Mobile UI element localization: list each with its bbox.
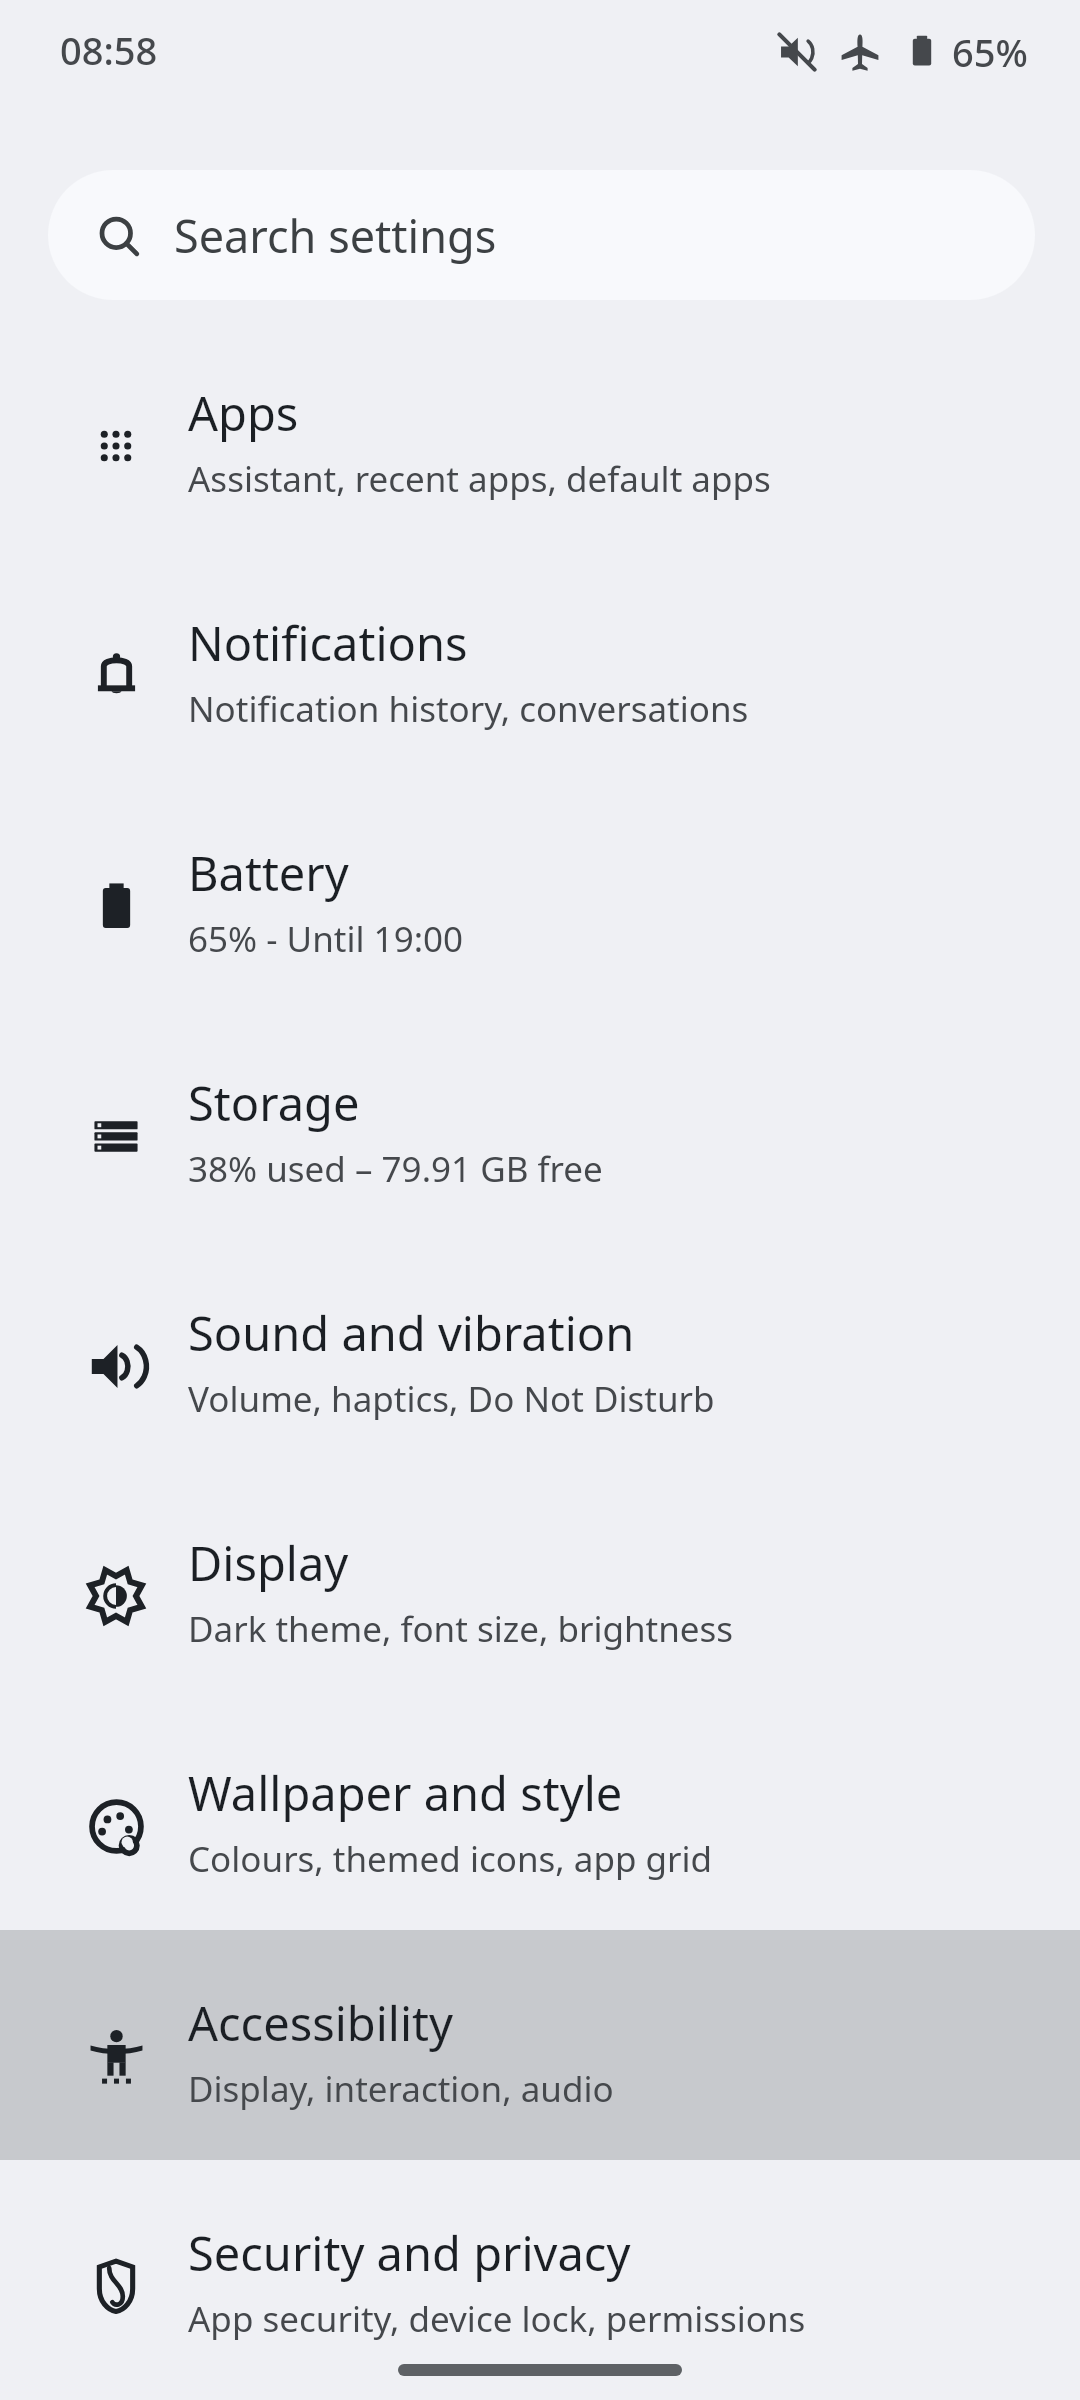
button[interactable]: Notifications	[0, 550, 1080, 780]
staticText: 65%	[952, 26, 1028, 78]
staticText: Notifications	[188, 611, 468, 675]
button[interactable]: Sound and vibration	[0, 1240, 1080, 1470]
button[interactable]: Apps	[0, 320, 1080, 550]
button[interactable]: Accessibility	[0, 1930, 1080, 2160]
staticText: Volume, haptics, Do Not Disturb	[188, 1375, 715, 1423]
staticText: Battery	[188, 841, 349, 905]
staticText: 65% - Until 19:00	[188, 915, 464, 963]
button[interactable]: Security and privacy	[0, 2160, 1080, 2390]
button[interactable]: Battery	[0, 780, 1080, 1010]
staticText: Dark theme, font size, brightness	[188, 1605, 734, 1653]
staticText: Display, interaction, audio	[188, 2065, 614, 2113]
staticText: Display	[188, 1531, 349, 1595]
other: Search	[94, 211, 144, 261]
staticText: Notification history, conversations	[188, 685, 749, 733]
button[interactable]: Storage	[0, 1010, 1080, 1240]
staticText: App security, device lock, permissions	[188, 2295, 806, 2343]
staticText: Colours, themed icons, app grid	[188, 1835, 713, 1883]
staticText: Apps	[188, 381, 299, 445]
staticText: Sound and vibration	[188, 1301, 635, 1365]
staticText: Accessibility	[188, 1991, 454, 2055]
staticText: 38% used – 79.91 GB free	[188, 1145, 603, 1193]
staticText: Assistant, recent apps, default apps	[188, 455, 771, 503]
staticText: Wallpaper and style	[188, 1761, 623, 1825]
staticText: Storage	[188, 1071, 360, 1135]
staticText: Search settings	[174, 205, 497, 266]
button[interactable]: Display	[0, 1470, 1080, 1700]
button[interactable]: Search	[48, 170, 1035, 300]
staticText: 08:58	[60, 24, 158, 76]
staticText: Security and privacy	[188, 2221, 631, 2285]
button[interactable]: Wallpaper and style	[0, 1700, 1080, 1930]
